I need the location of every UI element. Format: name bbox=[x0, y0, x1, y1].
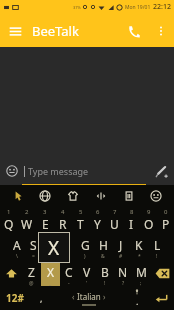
staticText: F bbox=[64, 237, 71, 253]
staticText: ; bbox=[140, 280, 142, 286]
staticText: 1 bbox=[7, 208, 11, 216]
button[interactable]: ‹ bbox=[52, 286, 126, 310]
button[interactable]: Call bbox=[118, 16, 148, 46]
staticText: . bbox=[136, 295, 139, 307]
staticText: * bbox=[138, 253, 141, 260]
button[interactable]: 3 bbox=[36, 208, 54, 234]
staticText: U bbox=[110, 216, 119, 232]
button[interactable]: B bbox=[96, 260, 114, 286]
staticText: W bbox=[21, 216, 33, 232]
staticText: 4 bbox=[61, 208, 65, 216]
button[interactable]: Language bbox=[35, 186, 55, 206]
staticText: ( bbox=[50, 253, 52, 260]
staticText: H bbox=[99, 237, 108, 253]
button[interactable]: 6 bbox=[89, 208, 106, 234]
button[interactable]: 1 bbox=[0, 208, 18, 234]
staticText: 9 bbox=[147, 208, 151, 216]
button[interactable]: 7 bbox=[106, 208, 123, 234]
staticText: ) bbox=[84, 253, 86, 260]
staticText: T bbox=[77, 216, 84, 232]
button[interactable]: 2 bbox=[18, 208, 36, 234]
staticText: BeeTalk bbox=[32, 22, 79, 40]
button[interactable]: 12# bbox=[0, 286, 30, 310]
staticText: Z bbox=[28, 264, 35, 280]
button[interactable]: 5 bbox=[72, 208, 89, 234]
button[interactable]: X bbox=[41, 260, 60, 286]
button[interactable]: A bbox=[8, 234, 25, 260]
button[interactable]: . bbox=[126, 286, 148, 310]
staticText: X bbox=[47, 264, 55, 280]
staticText: Y bbox=[94, 216, 101, 232]
staticText: ? bbox=[122, 280, 125, 286]
button[interactable]: Enter bbox=[148, 286, 174, 310]
button[interactable]: Cursor control bbox=[8, 186, 28, 206]
button[interactable]: J bbox=[112, 234, 130, 260]
staticText: I bbox=[129, 216, 134, 232]
button[interactable]: Theme bbox=[63, 186, 83, 206]
button[interactable]: C bbox=[60, 260, 78, 286]
button[interactable]: Emoji bbox=[0, 158, 174, 184]
staticText: › bbox=[103, 291, 106, 302]
staticText: R bbox=[59, 216, 67, 232]
button[interactable]: Navigation menu bbox=[0, 16, 30, 46]
staticText: X bbox=[48, 235, 60, 261]
button[interactable]: , bbox=[30, 286, 52, 310]
staticText: 2 bbox=[25, 208, 29, 216]
button[interactable]: Clipboard bbox=[119, 186, 139, 206]
button[interactable]: 0 bbox=[157, 208, 174, 234]
staticText: ‹ bbox=[72, 291, 75, 302]
staticText: N bbox=[118, 264, 128, 280]
button[interactable]: Backspace bbox=[150, 260, 174, 286]
staticText: Mon 19/01 bbox=[125, 4, 151, 11]
staticText: & bbox=[101, 253, 105, 260]
staticText: G bbox=[81, 237, 90, 253]
staticText: C bbox=[65, 264, 73, 280]
staticText: @ bbox=[29, 280, 34, 286]
button[interactable]: M bbox=[132, 260, 150, 286]
staticText: 7 bbox=[113, 208, 117, 216]
staticText: Type message bbox=[28, 165, 89, 177]
staticText: 37% bbox=[73, 5, 81, 10]
staticText: - bbox=[68, 280, 70, 286]
button[interactable]: Emoji bbox=[0, 159, 24, 183]
staticText: 3 bbox=[43, 208, 47, 216]
staticText: O bbox=[144, 216, 154, 232]
staticText: Italian bbox=[75, 291, 103, 302]
button[interactable]: 9 bbox=[140, 208, 157, 234]
button[interactable]: K bbox=[130, 234, 148, 260]
staticText: S bbox=[30, 237, 37, 253]
button[interactable]: Z bbox=[22, 260, 41, 286]
button[interactable]: S bbox=[25, 234, 42, 260]
staticText: 0 bbox=[164, 208, 168, 216]
button[interactable]: G bbox=[76, 234, 94, 260]
staticText: J bbox=[119, 237, 123, 253]
button[interactable]: Resize keyboard bbox=[91, 186, 111, 206]
button[interactable]: Shift bbox=[0, 260, 22, 286]
button[interactable]: L bbox=[148, 234, 166, 260]
staticText: 22:12 bbox=[153, 2, 171, 12]
button[interactable]: H bbox=[94, 234, 112, 260]
button[interactable]: Attach bbox=[148, 158, 174, 184]
button[interactable]: More options bbox=[148, 18, 174, 44]
staticText: V bbox=[83, 264, 91, 280]
staticText: # bbox=[119, 253, 123, 260]
staticText: Q bbox=[4, 216, 14, 232]
staticText: 6 bbox=[96, 208, 100, 216]
button[interactable]: D bbox=[42, 234, 59, 260]
staticText: M bbox=[136, 264, 147, 280]
staticText: _ bbox=[49, 280, 52, 286]
button[interactable]: 8 bbox=[123, 208, 140, 234]
staticText: ! bbox=[156, 253, 158, 260]
button[interactable]: 4 bbox=[54, 208, 72, 234]
staticText: \ bbox=[16, 253, 18, 260]
staticText: ! bbox=[104, 280, 106, 286]
staticText: K bbox=[135, 237, 143, 253]
button[interactable]: F bbox=[59, 234, 76, 260]
button[interactable]: V bbox=[78, 260, 96, 286]
staticText: 12# bbox=[6, 291, 24, 305]
staticText: D bbox=[46, 237, 55, 253]
staticText: L bbox=[154, 237, 161, 253]
button[interactable]: N bbox=[114, 260, 132, 286]
button[interactable]: Emoji bbox=[146, 186, 166, 206]
